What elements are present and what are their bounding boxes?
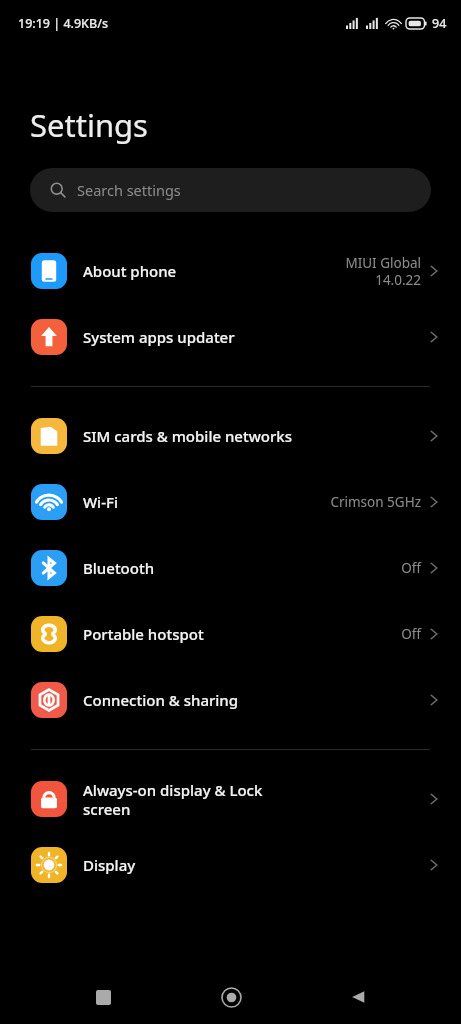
button[interactable]: Recent apps: [79, 973, 127, 1021]
button[interactable]: Always-on display & Lock screen: [0, 766, 461, 832]
staticText: 94: [432, 15, 447, 32]
button[interactable]: System apps updater: [0, 304, 461, 370]
button[interactable]: Bluetooth: [0, 535, 461, 601]
staticText: Crimson 5GHz: [330, 493, 421, 511]
staticText: Wi-Fi: [83, 492, 330, 512]
staticText: Off: [401, 625, 421, 643]
button[interactable]: Search settings: [30, 168, 431, 212]
staticText: Portable hotspot: [83, 624, 401, 644]
staticText: SIM cards & mobile networks: [83, 426, 429, 446]
button[interactable]: About phone: [0, 238, 461, 304]
staticText: 19:19 | 4.9KB/s: [18, 15, 109, 32]
staticText: Search settings: [77, 180, 181, 200]
staticText: Settings: [30, 104, 148, 146]
staticText: Display: [83, 855, 429, 875]
staticText: System apps updater: [83, 327, 429, 347]
button[interactable]: Connection & sharing: [0, 667, 461, 733]
staticText: Always-on display & Lock screen: [83, 780, 429, 819]
staticText: MIUI Global 14.0.22: [345, 254, 421, 289]
button[interactable]: Home: [207, 973, 255, 1021]
button[interactable]: Wi-Fi: [0, 469, 461, 535]
staticText: About phone: [83, 261, 345, 281]
button[interactable]: Portable hotspot: [0, 601, 461, 667]
staticText: Connection & sharing: [83, 690, 429, 710]
staticText: Bluetooth: [83, 558, 401, 578]
button[interactable]: SIM cards & mobile networks: [0, 403, 461, 469]
staticText: Off: [401, 559, 421, 577]
button[interactable]: Back: [334, 973, 382, 1021]
button[interactable]: Display: [0, 832, 461, 898]
